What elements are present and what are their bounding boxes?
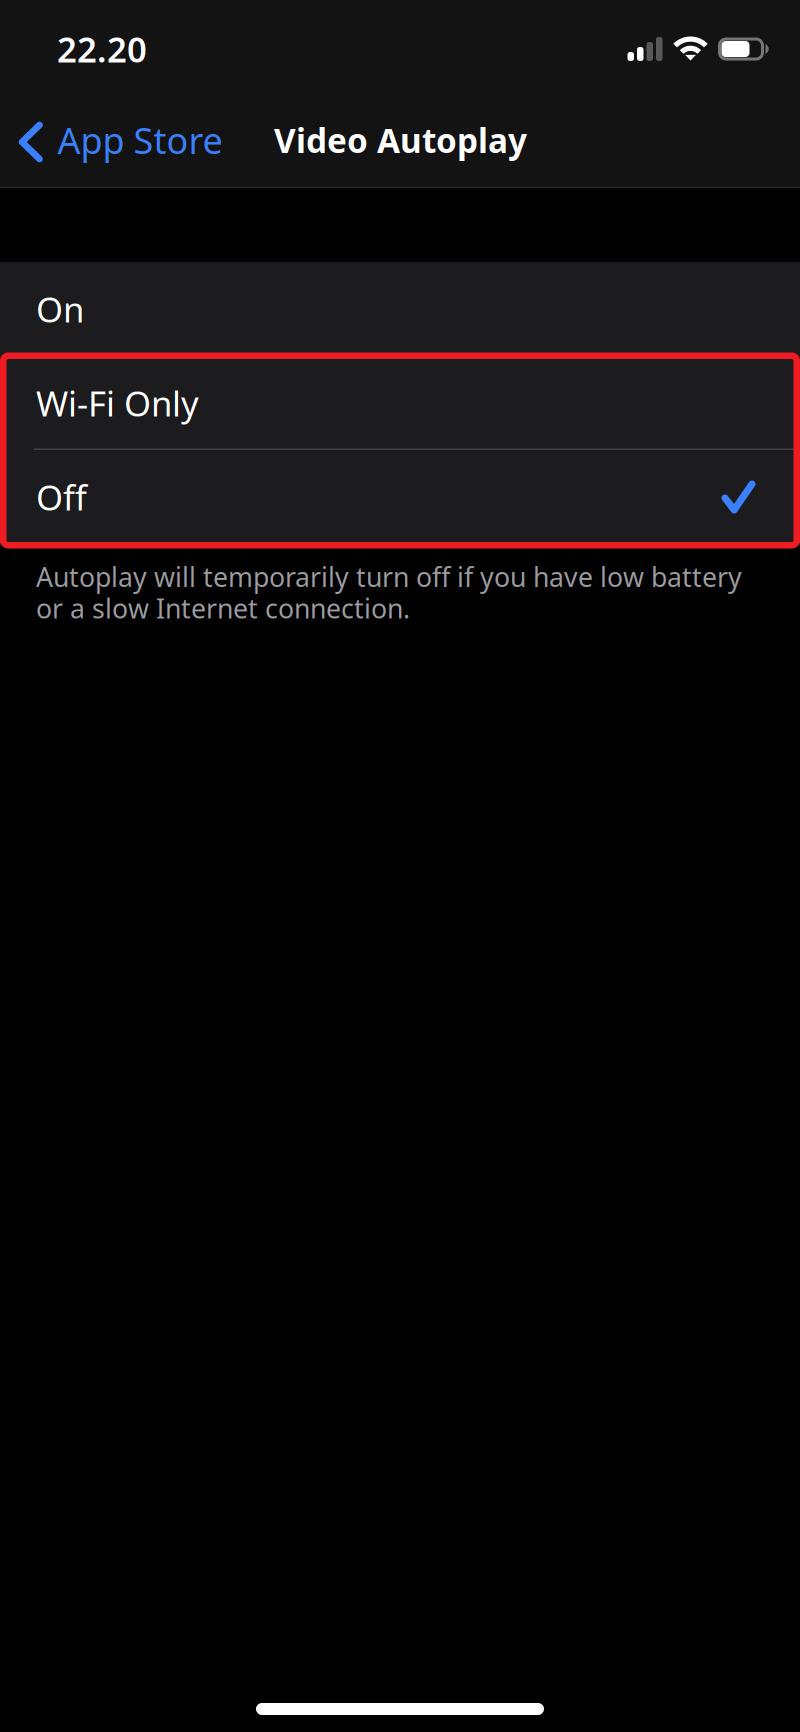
staticText: Autoplay will temporarily turn off if yo… bbox=[36, 559, 742, 626]
button[interactable]: Back to App Store bbox=[0, 102, 222, 184]
staticText: 22.20 bbox=[57, 26, 147, 72]
staticText: App Store bbox=[57, 116, 222, 164]
button[interactable]: On bbox=[0, 262, 800, 356]
staticText: On bbox=[36, 286, 84, 332]
button[interactable]: Off bbox=[0, 450, 800, 544]
staticText: Off bbox=[36, 474, 87, 520]
staticText: Wi-Fi Only bbox=[36, 380, 199, 426]
button[interactable]: Wi-Fi Only bbox=[0, 356, 800, 450]
staticText: Video Autoplay bbox=[274, 118, 527, 162]
